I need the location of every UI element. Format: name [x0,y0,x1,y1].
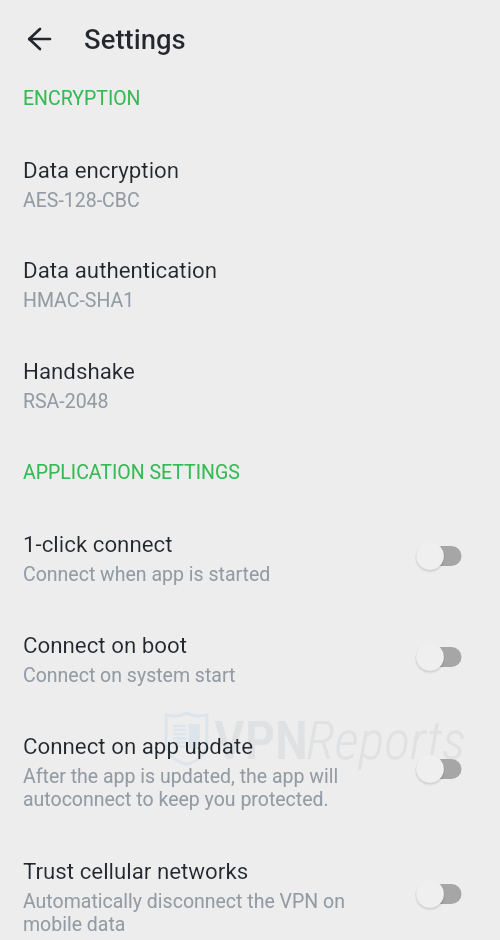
staticText: HMAC-SHA1 [23,289,135,312]
button[interactable]: Connect on app update [0,733,500,811]
staticText: After the app is updated, the app will a… [23,765,339,811]
staticText: APPLICATION SETTINGS [23,461,240,484]
staticText: Connect on boot [23,632,187,658]
staticText: Trust cellular networks [23,858,249,884]
button[interactable]: Toggle [416,752,462,786]
staticText: Connect when app is started [23,563,271,586]
staticText: 1-click connect [23,531,173,557]
staticText: Connect on app update [23,733,254,759]
button[interactable]: Toggle [416,539,462,573]
staticText: Data authentication [23,257,218,283]
button[interactable]: Toggle [416,640,462,674]
staticText: ENCRYPTION [23,87,141,110]
staticText: AES-128-CBC [23,189,140,212]
staticText: VPN [214,709,309,772]
staticText: Data encryption [23,157,180,183]
staticText: Settings [84,23,186,55]
staticText: Connect on system start [23,664,236,687]
button[interactable]: Toggle [416,877,462,911]
button[interactable]: Back [15,17,63,65]
staticText: Reports [306,709,466,772]
staticText: Handshake [23,358,135,384]
button[interactable]: Data authentication [0,257,500,312]
button[interactable]: Connect on boot [0,632,500,687]
staticText: Automatically disconnect the VPN on mobi… [23,890,345,936]
button[interactable]: 1-click connect [0,531,500,586]
button[interactable]: Trust cellular networks [0,858,500,936]
button[interactable]: Handshake [0,358,500,413]
button[interactable]: Data encryption [0,157,500,212]
staticText: RSA-2048 [23,390,109,413]
